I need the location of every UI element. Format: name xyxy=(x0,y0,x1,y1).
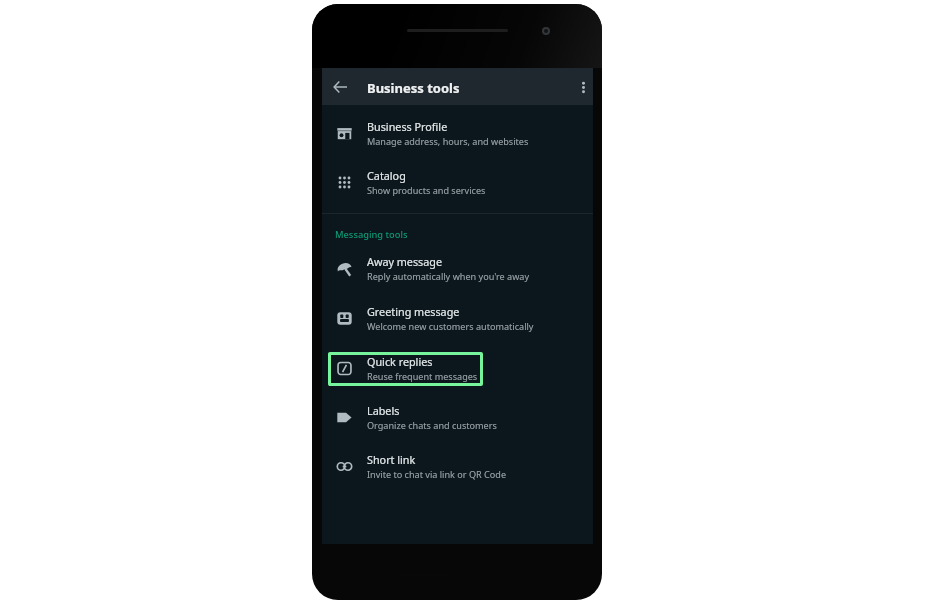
button[interactable]: Quick replies xyxy=(322,340,593,389)
button[interactable]: Back xyxy=(328,75,352,99)
staticText: Welcome new customers automatically xyxy=(367,320,534,332)
staticText: Reuse frequent messages xyxy=(367,370,478,382)
staticText: Invite to chat via link or QR Code xyxy=(367,468,507,480)
staticText: Greeting message xyxy=(367,304,460,319)
staticText: Reply automatically when you're away xyxy=(367,270,530,282)
staticText: Organize chats and customers xyxy=(367,419,497,431)
staticText: Business tools xyxy=(367,79,460,97)
staticText: Quick replies xyxy=(367,354,433,369)
button[interactable]: Greeting message xyxy=(322,290,593,339)
button[interactable]: Short link xyxy=(322,438,593,487)
staticText: Catalog xyxy=(367,168,406,183)
button[interactable]: Away message xyxy=(322,240,593,289)
staticText: Labels xyxy=(367,403,400,418)
staticText: Short link xyxy=(367,452,416,467)
button[interactable]: Business Profile xyxy=(322,105,593,154)
staticText: Manage address, hours, and websites xyxy=(367,135,529,147)
button[interactable]: Catalog xyxy=(322,154,593,203)
button[interactable]: Labels xyxy=(322,389,593,438)
staticText: Business Profile xyxy=(367,119,448,134)
staticText: Messaging tools xyxy=(335,228,408,241)
staticText: Away message xyxy=(367,254,443,269)
button[interactable]: More options xyxy=(571,75,595,99)
staticText: Show products and services xyxy=(367,184,486,196)
